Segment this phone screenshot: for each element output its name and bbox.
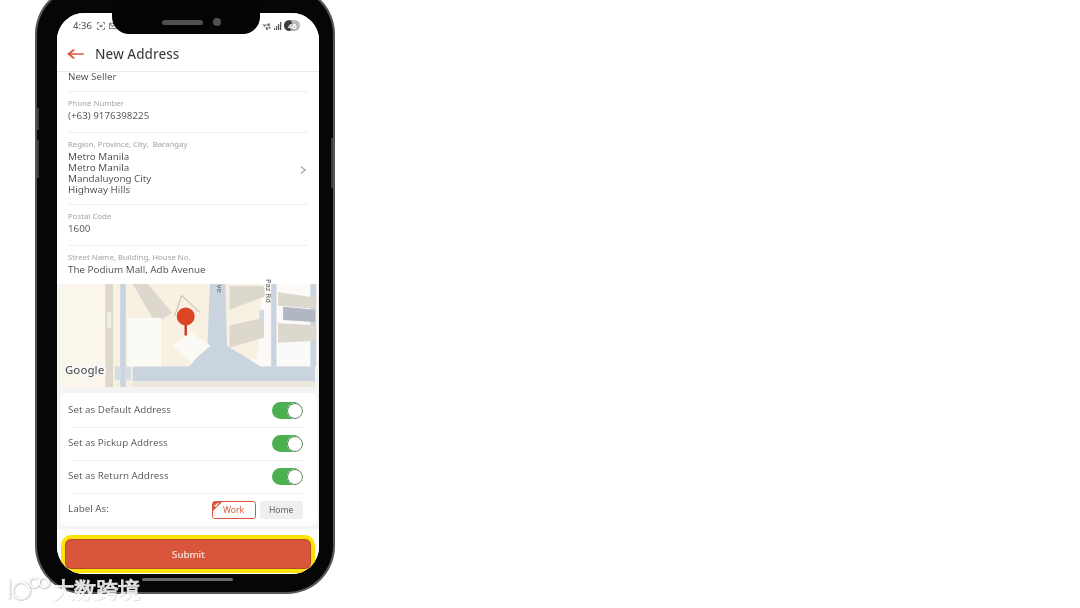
staticText: Paz Rd [264,279,274,303]
staticText: Submit [172,548,205,561]
button[interactable]: New Seller [57,72,319,92]
button[interactable]: Region, Province, City, Barangay [57,133,319,205]
button[interactable]: Phone Number [57,93,319,132]
staticText: Google [66,363,107,379]
staticText: New Address [95,45,180,63]
button[interactable]: Postal Code [57,205,319,245]
staticText: 大数跨境 [53,578,141,606]
staticText: 4:36 [73,19,92,32]
staticText: Google [64,362,105,378]
staticText: Label As: [68,502,109,515]
button[interactable]: Home [260,501,303,519]
staticText: Region, Province, City, Barangay [68,139,188,150]
button[interactable]: Map location [60,284,315,387]
staticText: Google [65,363,106,379]
staticText: Google [64,363,105,379]
staticText: (+63) 9176398225 [68,109,150,122]
button[interactable]: Set as Default Address [60,394,317,427]
staticText: Set as Pickup Address [68,436,168,449]
staticText: ve [214,284,224,293]
staticText: Metro Manila Metro Manila Mandaluyong Ci… [68,150,152,196]
staticText: Google [66,362,107,378]
button[interactable]: Set as Return Address [60,460,317,493]
button[interactable]: Street Name, Building, House No. [57,246,319,284]
staticText: Set as Return Address [68,469,169,482]
staticText: Google [65,362,105,378]
button[interactable]: Work [212,501,256,519]
staticText: Set as Default Address [68,403,172,416]
staticText: 46 [288,21,297,31]
staticText: 1600 [68,222,91,235]
staticText: New Seller [68,70,117,83]
staticText: Street Name, Building, House No. [68,252,191,263]
staticText: Google [64,361,105,377]
staticText: Google [66,361,107,377]
staticText: Phone Number [68,98,124,109]
button[interactable]: Set as Pickup Address [60,427,317,460]
staticText: Postal Code [68,211,112,222]
staticText: Work [223,504,245,516]
staticText: Google [65,361,106,377]
button[interactable]: Back [62,41,88,67]
staticText: 大数跨境 [52,577,140,605]
staticText: The Podium Mall, Adb Avenue [68,263,206,276]
staticText: Home [269,504,294,516]
button[interactable]: Submit [66,540,310,568]
